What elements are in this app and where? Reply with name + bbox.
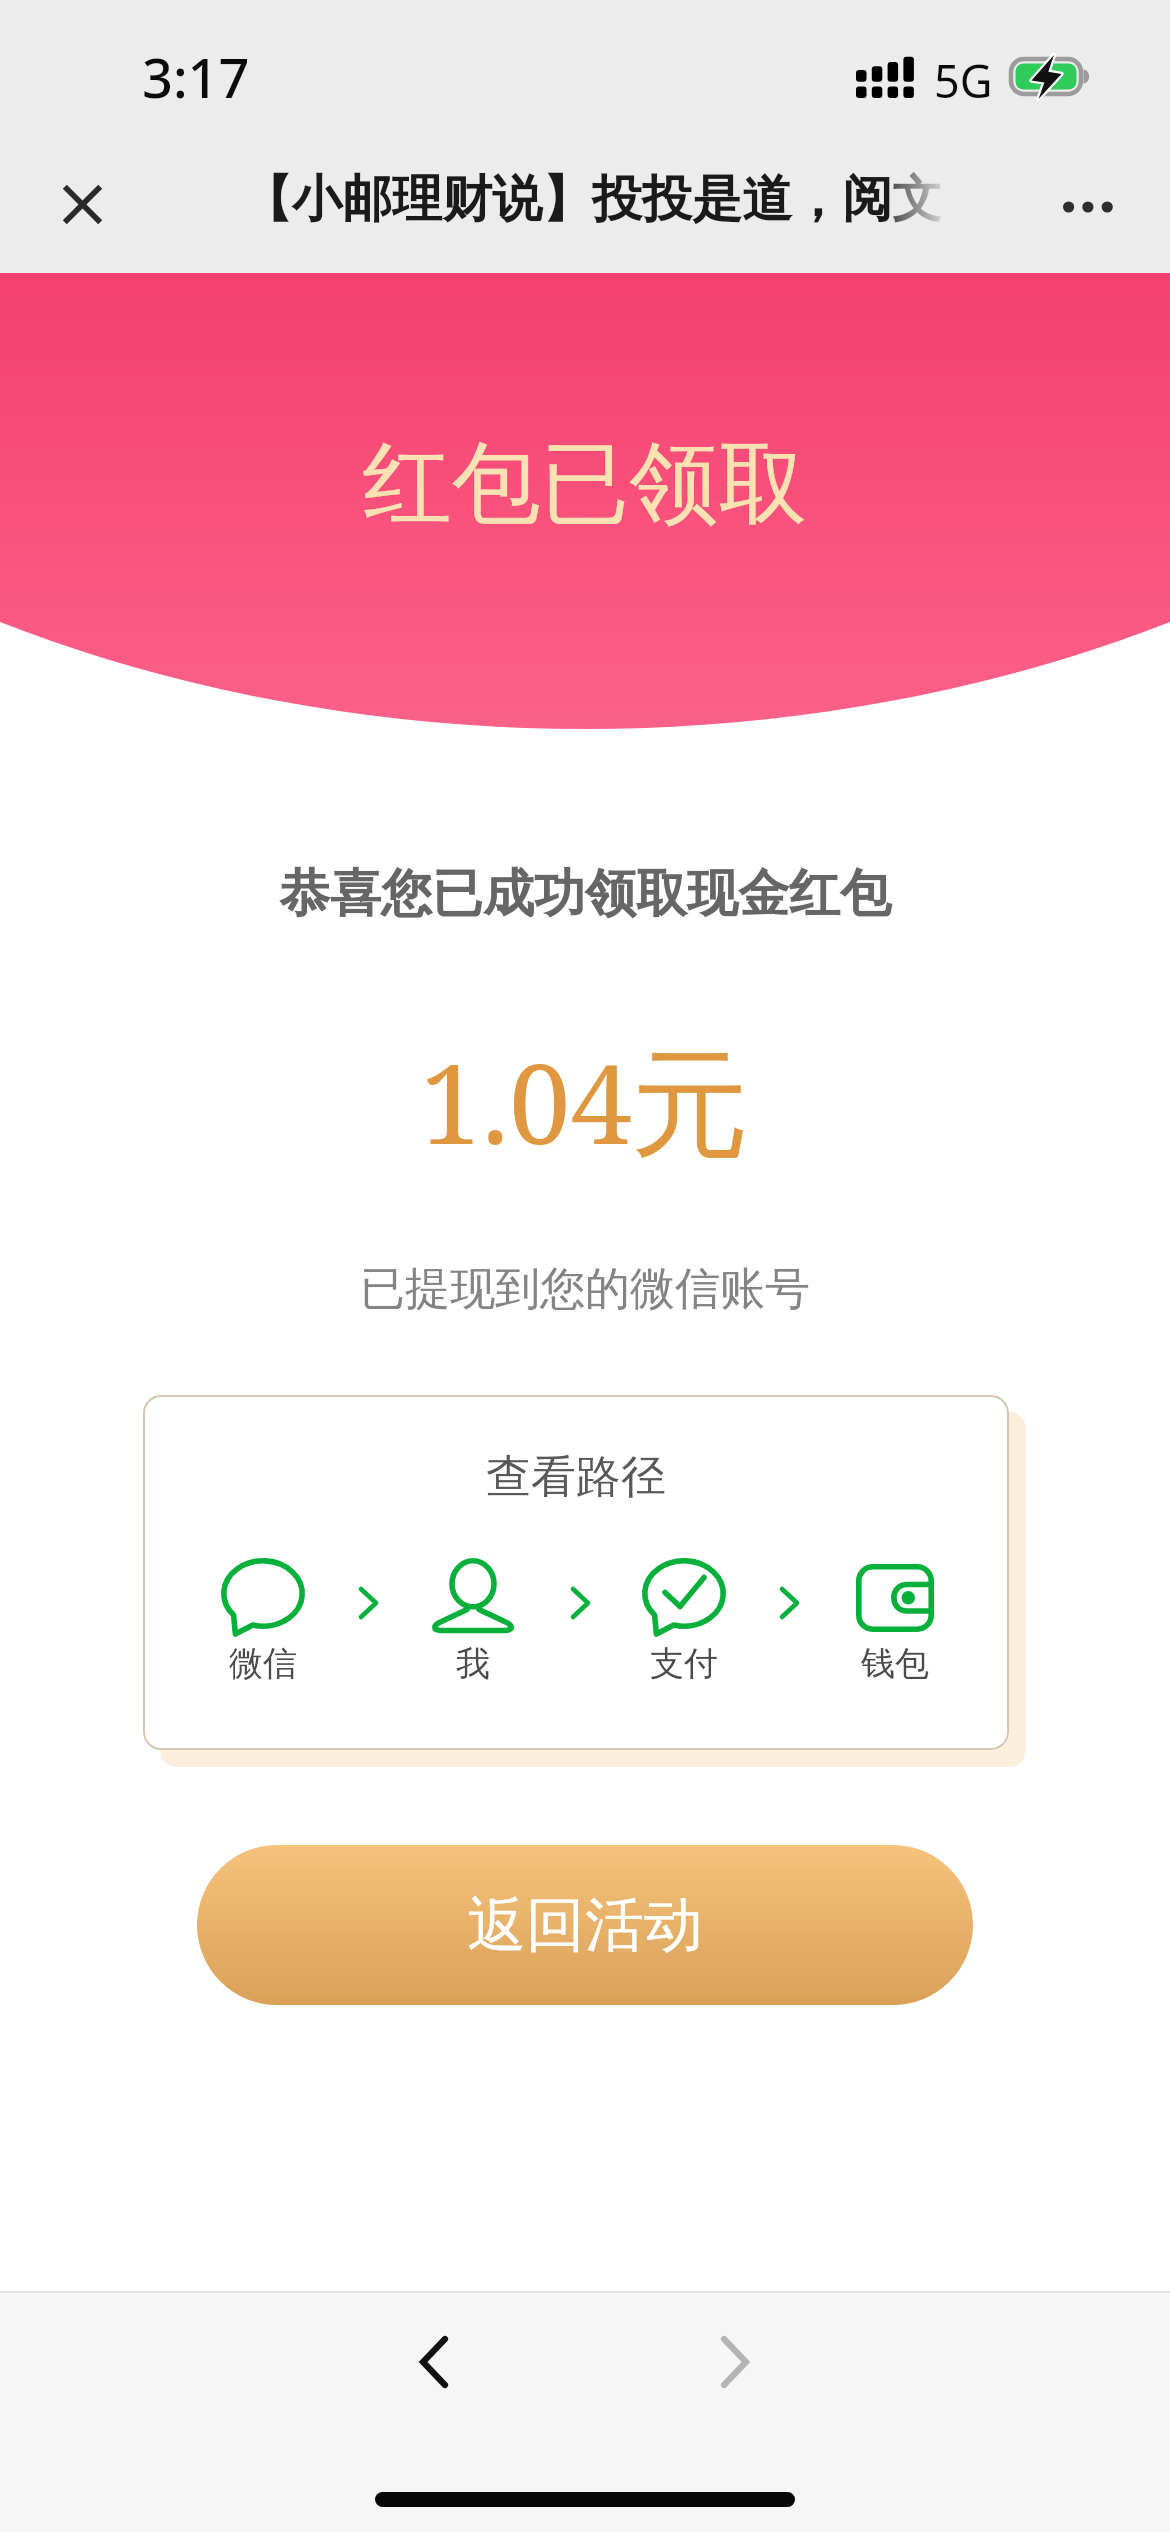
button[interactable]: 查看路径: [143, 1395, 1009, 1750]
button[interactable]: Back: [384, 2312, 484, 2412]
staticText: 钱包: [835, 1642, 955, 1685]
staticText: 红包已领取: [0, 428, 1170, 540]
staticText: 已提现到您的微信账号: [0, 1261, 1170, 1318]
button[interactable]: Close: [38, 160, 126, 248]
staticText: 查看路径: [143, 1449, 1009, 1506]
staticText: 支付: [624, 1642, 744, 1685]
staticText: 微信: [203, 1642, 323, 1685]
staticText: 【小邮理财说】投投是道，阅文: [242, 168, 942, 231]
staticText: 恭喜您已成功领取现金红包: [0, 862, 1170, 926]
staticText: 我: [413, 1642, 533, 1685]
button[interactable]: 返回活动: [197, 1845, 973, 2005]
button[interactable]: More options: [1044, 163, 1132, 251]
button[interactable]: Forward: [685, 2312, 785, 2412]
staticText: 3:17: [142, 40, 250, 114]
staticText: 5G: [934, 50, 993, 111]
staticText: 返回活动: [467, 1888, 703, 1962]
staticText: 元: [631, 1031, 749, 1180]
staticText: 1.04: [420, 1026, 632, 1176]
